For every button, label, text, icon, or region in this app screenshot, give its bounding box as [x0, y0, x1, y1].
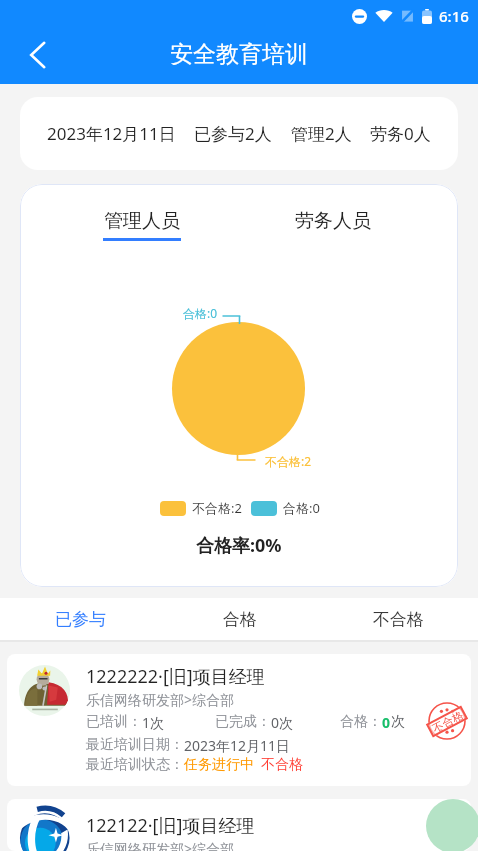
- staticText: 乐信网络研发部>综合部: [86, 839, 235, 851]
- staticText: 次: [391, 713, 405, 731]
- button[interactable]: 已参与: [0, 598, 160, 640]
- staticText: 乐信网络研发部>综合部: [86, 690, 235, 709]
- button[interactable]: 合格: [160, 598, 319, 640]
- button[interactable]: 管理人员: [103, 209, 181, 241]
- staticText: 不合格: [373, 609, 424, 630]
- staticText: 任务进行中: [184, 756, 254, 774]
- staticText: 合格: [223, 609, 257, 630]
- staticText: 1222222·[旧]项目经理: [86, 664, 265, 689]
- staticText: 管理人员: [104, 209, 180, 233]
- staticText: 不合格:2: [192, 499, 242, 517]
- staticText: 已参与2人: [194, 122, 272, 145]
- staticText: 不合格: [430, 708, 465, 736]
- staticText: 1次: [142, 713, 165, 732]
- staticText: 122122·[旧]项目经理: [86, 813, 255, 838]
- button[interactable]: 122122·[旧]项目经理: [7, 799, 471, 851]
- staticText: 不合格: [261, 756, 303, 774]
- staticText: 6:16: [439, 6, 469, 26]
- staticText: 合格：: [340, 713, 382, 731]
- staticText: 最近培训日期：: [86, 736, 184, 754]
- staticText: 最近培训状态：: [86, 756, 184, 774]
- button[interactable]: 不合格: [319, 598, 478, 640]
- staticText: 安全教育培训: [170, 40, 308, 69]
- staticText: 合格率:0%: [196, 533, 282, 558]
- staticText: 已完成：: [215, 713, 271, 731]
- staticText: 已参与: [55, 609, 106, 630]
- staticText: 合格:0: [183, 305, 218, 321]
- staticText: 0: [382, 713, 391, 732]
- button[interactable]: Back: [13, 31, 61, 79]
- button[interactable]: Quick action: [426, 799, 478, 851]
- button[interactable]: 1222222·[旧]项目经理: [7, 654, 471, 786]
- staticText: 合格:0: [283, 499, 320, 517]
- staticText: 不合格:2: [265, 453, 312, 469]
- button[interactable]: 劳务人员: [295, 209, 371, 233]
- staticText: 劳务0人: [370, 122, 431, 145]
- staticText: 2023年12月11日: [184, 736, 291, 755]
- staticText: 管理2人: [291, 122, 352, 145]
- button[interactable]: 2023年12月11日: [20, 97, 458, 170]
- staticText: 已培训：: [86, 713, 142, 731]
- staticText: 2023年12月11日: [47, 122, 176, 145]
- staticText: 0次: [271, 713, 294, 732]
